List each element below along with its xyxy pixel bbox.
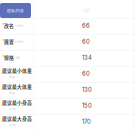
staticText: (kg) [9,74,15,79]
staticText: * [2,39,4,44]
staticText: 展置 [4,38,14,45]
staticText: 建议最大体重 [2,83,32,90]
staticText: 134 [82,54,92,61]
staticText: (kg) [9,90,15,95]
staticText: 60 [82,70,90,77]
staticText: 模版/内容 [7,8,24,13]
staticText: 60 [82,38,90,45]
button[interactable]: 模版/内容 [0,3,31,18]
staticText: * [2,55,4,60]
staticText: (cm) [9,106,16,111]
staticText: 内容 [82,8,90,14]
staticText: (cm) [9,122,16,127]
staticText: * [2,23,4,28]
staticText: 改名 [4,22,14,29]
staticText: 建议最小体重 [2,67,32,74]
staticText: 66 [82,22,90,29]
staticText: size [14,55,20,60]
staticText: color [14,39,23,44]
staticText: 建议最小身高 [2,99,32,106]
staticText: 规格 [4,54,14,61]
staticText: 建议最大身高 [2,115,32,122]
staticText: 170 [82,118,91,125]
staticText: 130 [82,86,92,93]
staticText: color [14,23,23,28]
staticText: 150 [82,102,92,109]
